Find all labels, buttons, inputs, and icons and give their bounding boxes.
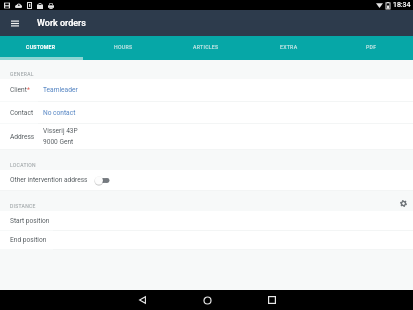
staticText: CUSTOMER bbox=[26, 44, 56, 50]
button[interactable]: HOURS bbox=[82, 36, 164, 58]
button[interactable]: EXTRA bbox=[247, 36, 330, 58]
button[interactable]: End position bbox=[0, 231, 413, 249]
staticText: No contact bbox=[43, 109, 76, 117]
button[interactable]: Recent apps bbox=[261, 290, 283, 310]
button[interactable]: Contact bbox=[0, 102, 413, 123]
staticText: Teamleader bbox=[43, 86, 78, 94]
staticText: Work orders bbox=[37, 18, 86, 29]
staticText: HOURS bbox=[114, 44, 133, 50]
staticText: ARTICLES bbox=[193, 44, 219, 50]
staticText: PDF bbox=[366, 44, 377, 50]
button[interactable]: Distance settings bbox=[396, 196, 410, 210]
button[interactable]: Client bbox=[0, 79, 413, 101]
staticText: GENERAL bbox=[10, 71, 34, 77]
staticText: End position bbox=[10, 236, 47, 244]
staticText: Client bbox=[10, 86, 27, 94]
button[interactable]: ARTICLES bbox=[164, 36, 247, 58]
button[interactable]: Home bbox=[196, 290, 218, 310]
button[interactable]: Address bbox=[0, 124, 413, 149]
button[interactable]: CUSTOMER bbox=[0, 36, 82, 58]
staticText: EXTRA bbox=[280, 44, 298, 50]
staticText: Visserij 43P bbox=[43, 127, 78, 135]
staticText: Contact bbox=[10, 109, 34, 117]
button[interactable]: Back bbox=[131, 290, 153, 310]
staticText: * bbox=[27, 86, 30, 94]
staticText: Start position bbox=[10, 217, 50, 225]
staticText: 18:34 bbox=[393, 1, 411, 9]
button[interactable]: Other intervention address bbox=[0, 170, 413, 190]
staticText: LOCATION bbox=[10, 162, 36, 168]
button[interactable]: PDF bbox=[330, 36, 413, 58]
staticText: Address bbox=[10, 133, 35, 141]
button[interactable]: Start position bbox=[0, 211, 413, 230]
staticText: DISTANCE bbox=[10, 203, 36, 209]
button[interactable]: Open navigation menu bbox=[5, 13, 25, 33]
staticText: Other intervention address bbox=[10, 176, 88, 184]
staticText: 9000 Gent bbox=[43, 138, 74, 146]
